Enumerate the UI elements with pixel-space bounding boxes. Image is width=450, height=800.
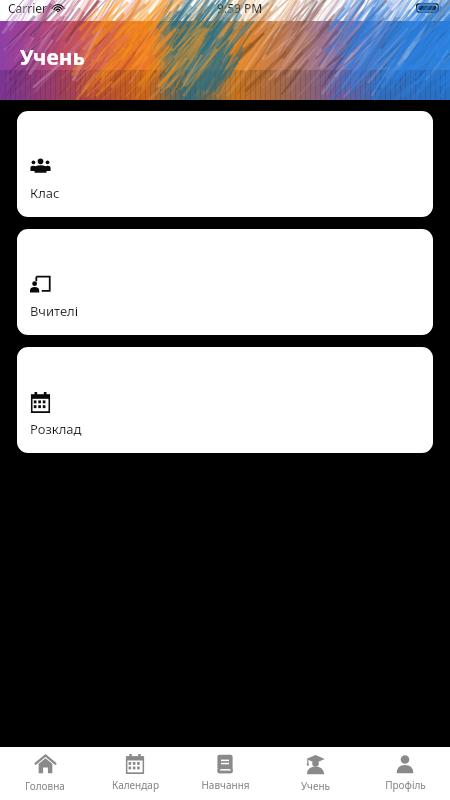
staticText: Вчителі <box>30 302 79 320</box>
staticText: Клас <box>30 184 60 202</box>
staticText: Календар <box>112 778 159 792</box>
button[interactable]: Профіль <box>360 747 450 792</box>
staticText: Навчання <box>201 778 250 792</box>
button[interactable]: Клас <box>17 111 433 217</box>
button[interactable]: Навчання <box>180 747 270 792</box>
button[interactable]: Головна <box>0 747 90 793</box>
staticText: Розклад <box>30 420 82 438</box>
staticText: Carrier <box>8 0 48 16</box>
staticText: Профіль <box>385 778 426 792</box>
button[interactable]: Календар <box>90 747 180 792</box>
button[interactable]: Вчителі <box>17 229 433 335</box>
staticText: 9:59 PM <box>217 0 263 16</box>
button[interactable]: Розклад <box>17 347 433 453</box>
staticText: Учень <box>301 779 330 793</box>
staticText: Головна <box>25 779 65 793</box>
button[interactable]: Учень <box>270 747 360 793</box>
staticText: Учень <box>20 43 85 72</box>
